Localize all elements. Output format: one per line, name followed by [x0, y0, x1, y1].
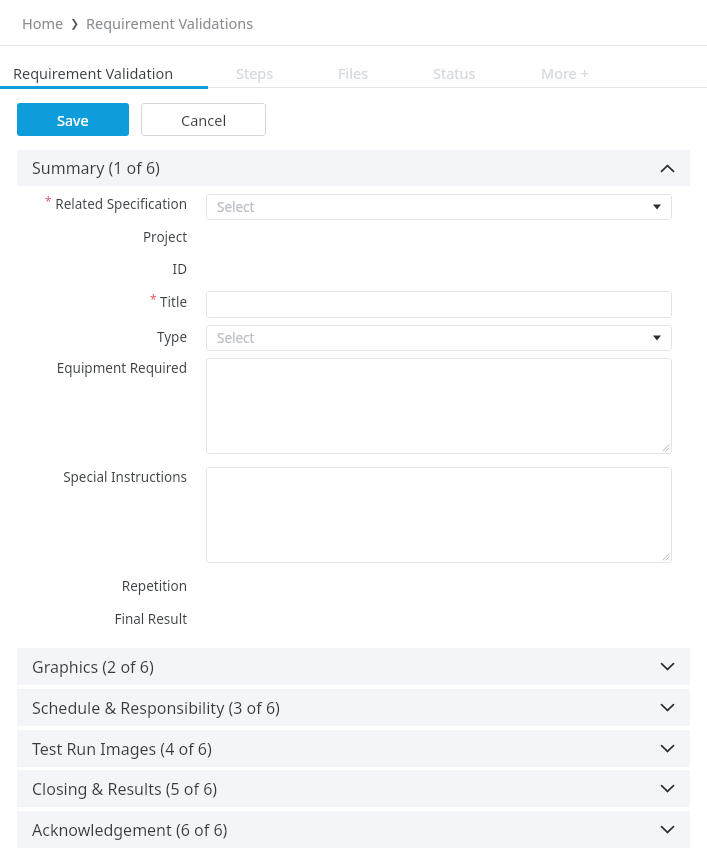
staticText: Test Run Images (4 of 6) [32, 738, 661, 760]
button[interactable]: Schedule & Responsibility (3 of 6) [17, 689, 690, 726]
staticText: Select [217, 198, 255, 216]
button[interactable]: Select [206, 194, 672, 220]
staticText: Title [160, 293, 187, 311]
staticText: Related Specification [55, 195, 187, 213]
staticText: Equipment Required [56, 359, 187, 377]
button[interactable]: Status [433, 60, 476, 86]
button[interactable] [206, 291, 672, 318]
button[interactable] [206, 467, 672, 563]
staticText: ❯ [70, 17, 80, 30]
button[interactable]: Home [22, 13, 64, 33]
button[interactable]: Select [206, 325, 672, 351]
button[interactable]: Acknowledgement (6 of 6) [17, 811, 690, 848]
staticText: Save [57, 110, 89, 130]
staticText: Closing & Results (5 of 6) [32, 778, 661, 800]
button[interactable]: Requirement Validation [13, 60, 174, 86]
staticText: Special Instructions [63, 468, 187, 486]
staticText: ID [172, 260, 187, 278]
staticText: * [45, 193, 52, 209]
staticText: Files [338, 63, 369, 83]
staticText: Graphics (2 of 6) [32, 656, 661, 678]
staticText: Type [156, 328, 187, 346]
button[interactable]: Cancel [141, 103, 266, 136]
staticText: More + [541, 63, 589, 83]
staticText: Select [217, 329, 255, 347]
button[interactable]: Test Run Images (4 of 6) [17, 730, 690, 767]
staticText: Acknowledgement (6 of 6) [32, 819, 661, 841]
staticText: Requirement Validations [86, 13, 254, 33]
staticText: Schedule & Responsibility (3 of 6) [32, 697, 661, 719]
staticText: * [150, 291, 157, 307]
staticText: Cancel [181, 110, 227, 130]
staticText: Summary (1 of 6) [32, 157, 661, 179]
button[interactable]: Closing & Results (5 of 6) [17, 770, 690, 807]
staticText: Project [142, 228, 187, 246]
staticText: Final Result [114, 610, 187, 628]
button[interactable]: Graphics (2 of 6) [17, 648, 690, 685]
staticText: Status [433, 63, 476, 83]
button[interactable]: Summary (1 of 6) [17, 150, 690, 186]
staticText: Requirement Validation [13, 63, 174, 83]
button[interactable]: More + [541, 60, 589, 86]
button[interactable]: Files [338, 60, 369, 86]
staticText: Repetition [121, 577, 187, 595]
button[interactable] [206, 358, 672, 454]
button[interactable]: Save [17, 103, 129, 136]
button[interactable]: Steps [236, 60, 274, 86]
staticText: Steps [236, 63, 274, 83]
